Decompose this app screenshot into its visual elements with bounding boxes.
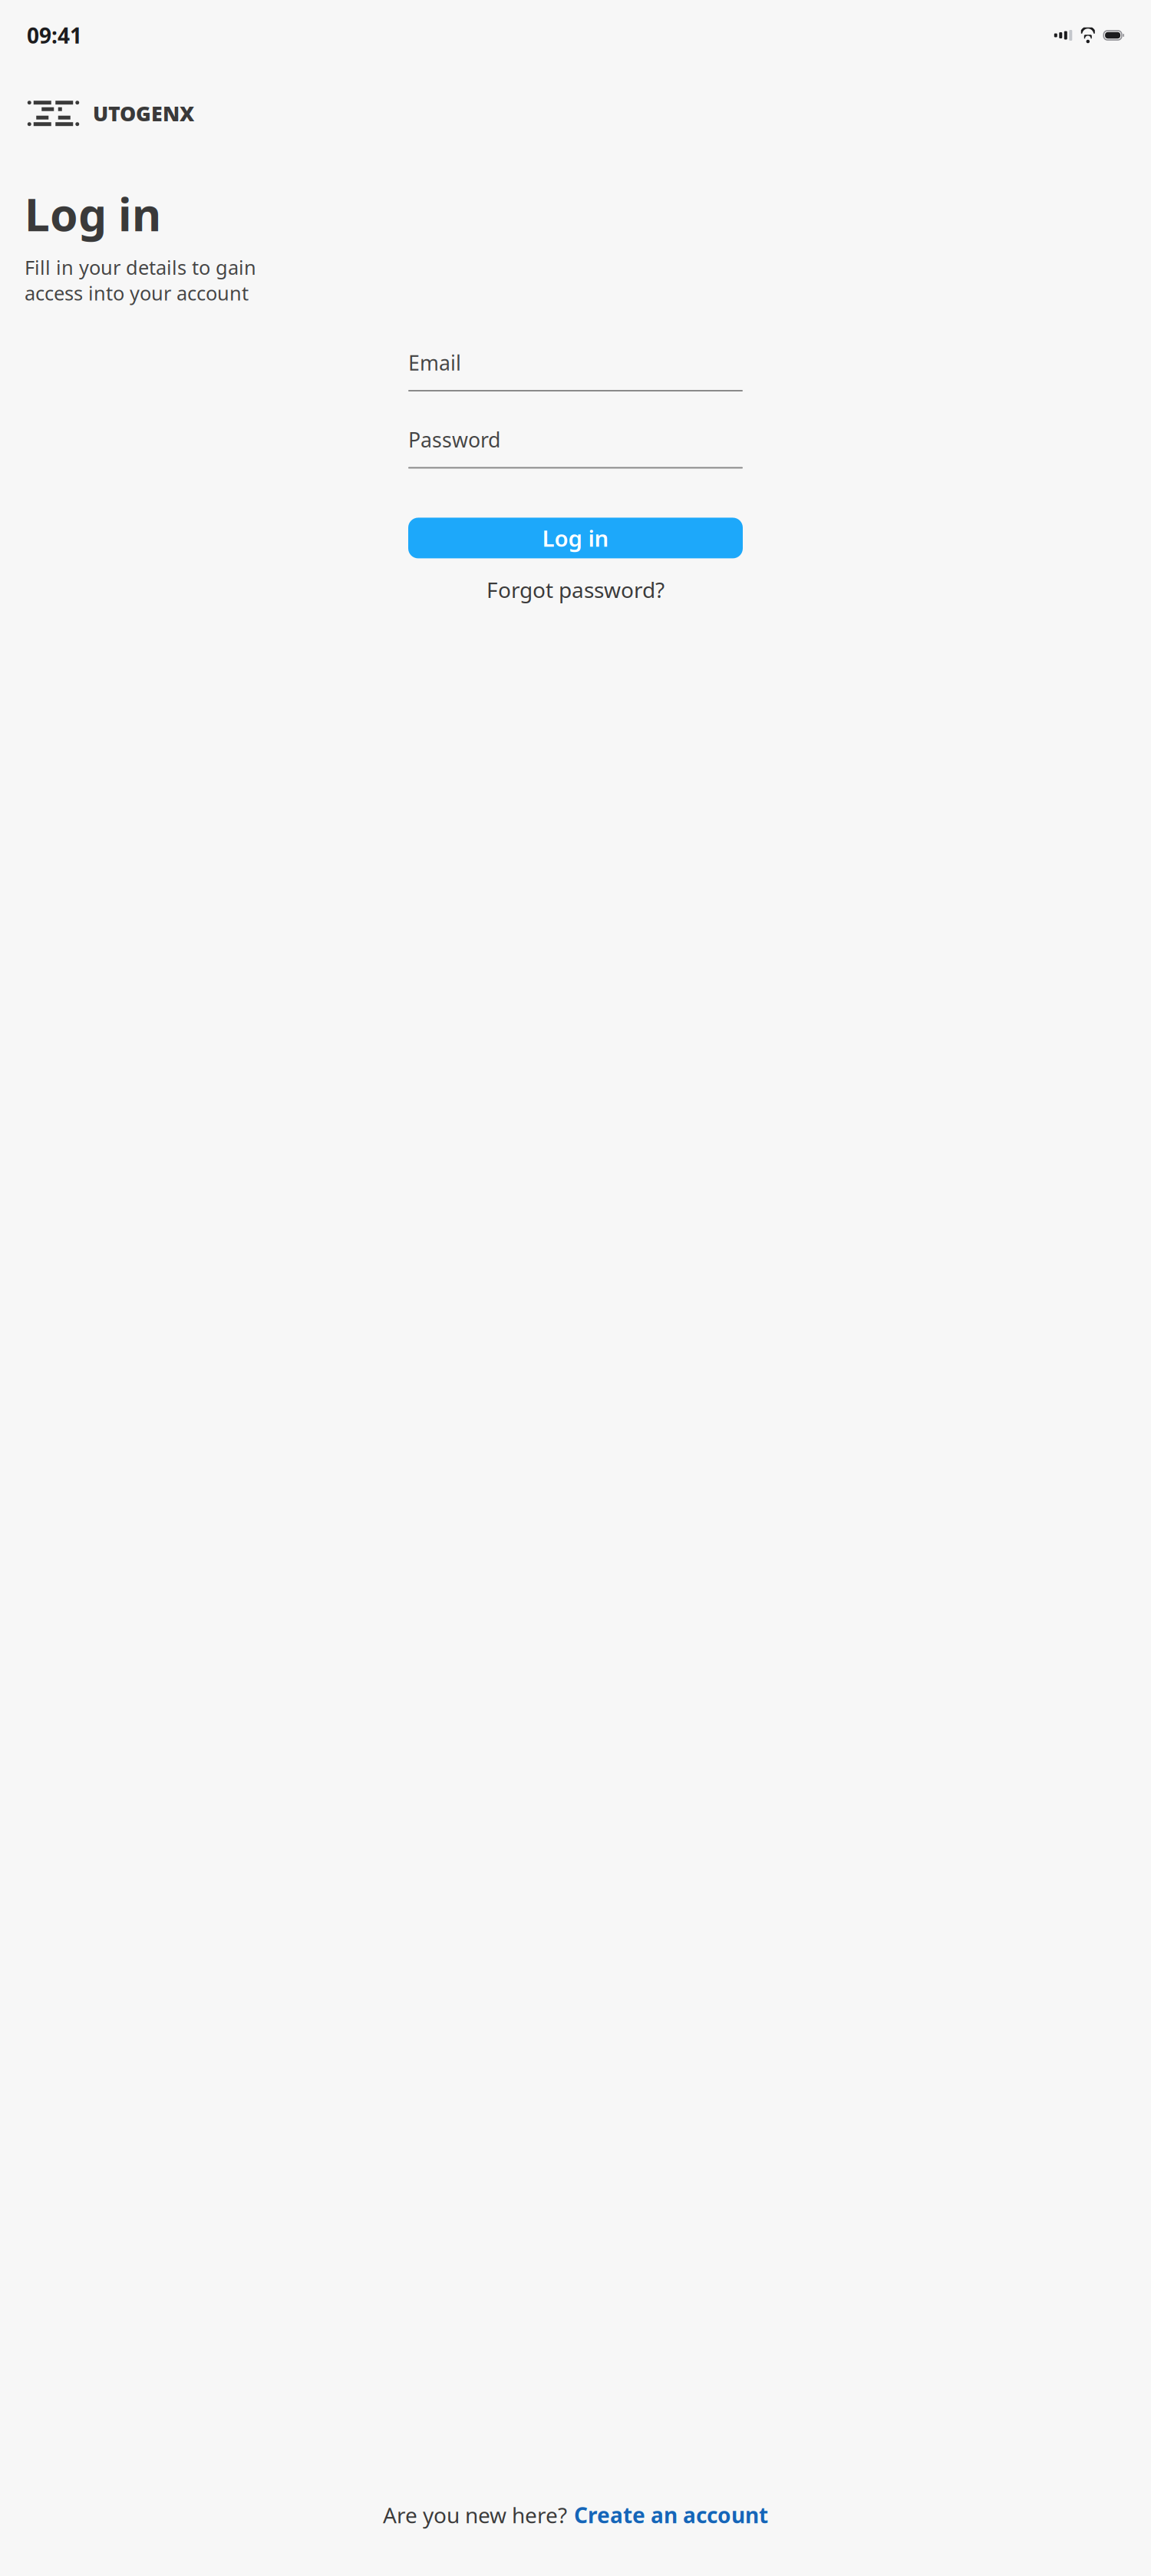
staticText: Email	[408, 349, 461, 376]
staticText: Create an account	[574, 2501, 768, 2529]
button[interactable]: Forgot password?	[474, 569, 677, 610]
staticText: Log in	[25, 184, 161, 244]
button[interactable]: Log in	[408, 518, 743, 558]
staticText: UTOGENX	[93, 100, 194, 127]
button[interactable]: Email	[408, 349, 743, 391]
button[interactable]: Password	[408, 426, 743, 469]
staticText: Are you new here?	[383, 2501, 567, 2529]
staticText: Fill in your details to gain access into…	[25, 254, 256, 306]
staticText: Log in	[542, 523, 609, 553]
staticText: Password	[408, 426, 500, 453]
staticText: Forgot password?	[486, 575, 665, 604]
button[interactable]: Create an account	[574, 2501, 768, 2529]
staticText: 09:41	[27, 21, 82, 50]
